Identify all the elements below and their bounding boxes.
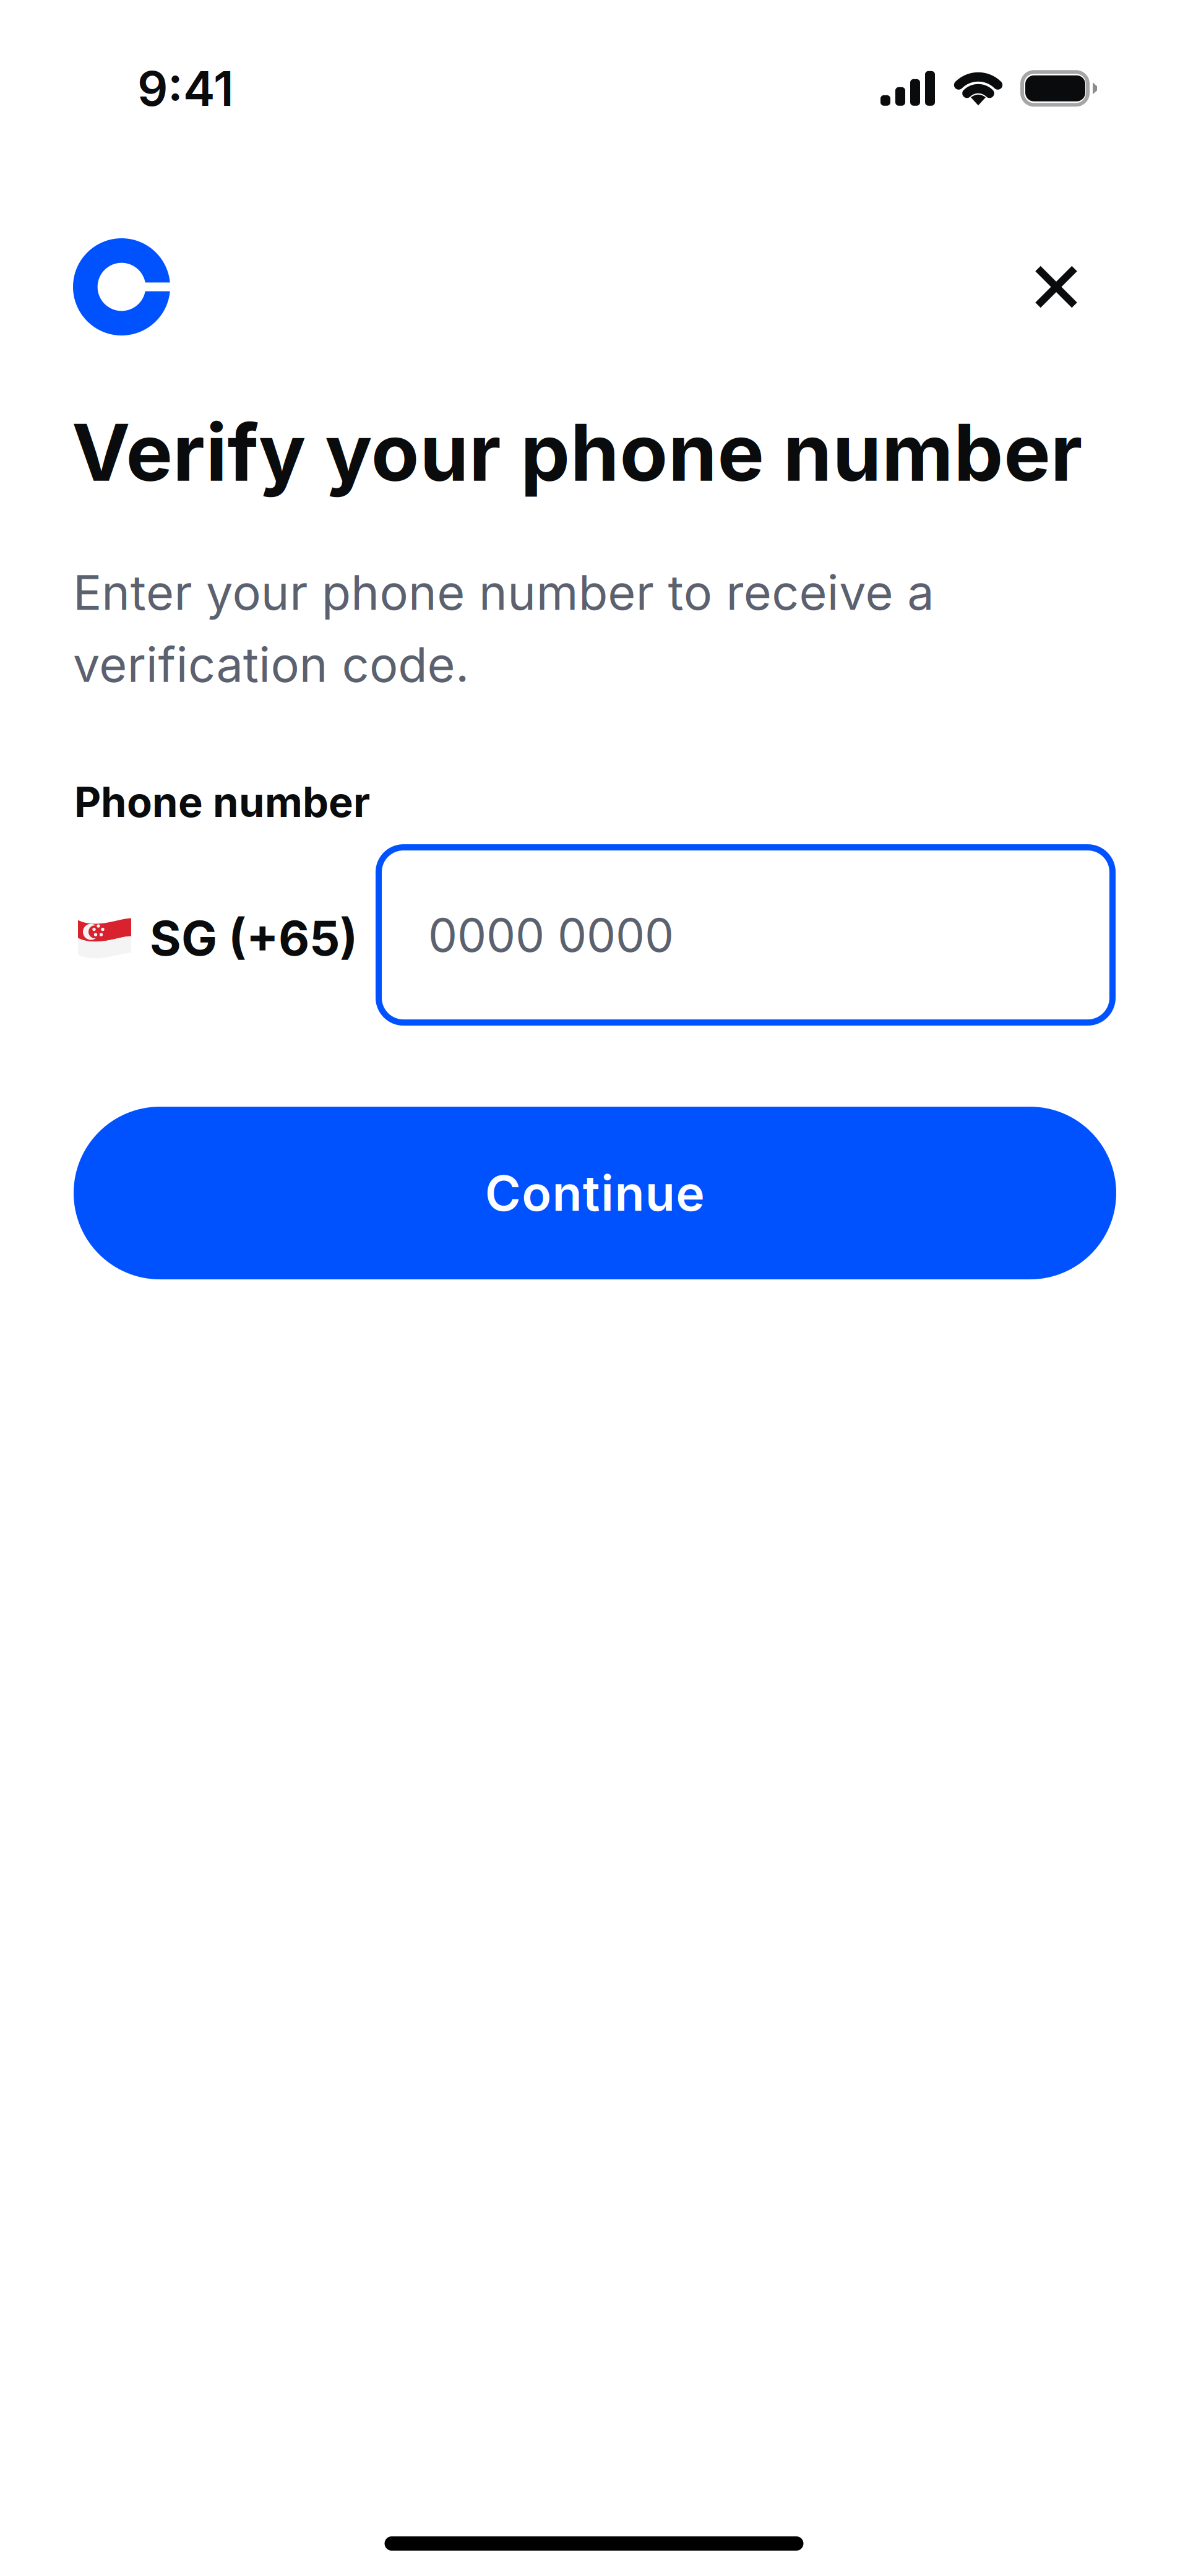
button[interactable]: Continue — [74, 1107, 1116, 1279]
button[interactable]: Phone number, 0000 0000 — [376, 844, 1116, 1026]
staticText: Continue — [485, 1164, 705, 1223]
staticText: Enter your phone number to receive a ver… — [73, 563, 934, 693]
staticText: 9:41 — [137, 59, 234, 117]
staticText: SG (+65) — [150, 909, 358, 967]
button[interactable]: Country code, Singapore (+65) — [78, 844, 376, 1026]
button[interactable]: Close — [1016, 247, 1096, 327]
staticText: 0000 0000 — [428, 907, 674, 963]
staticText: Verify your phone number — [72, 405, 1083, 500]
staticText: Phone number — [74, 777, 370, 827]
